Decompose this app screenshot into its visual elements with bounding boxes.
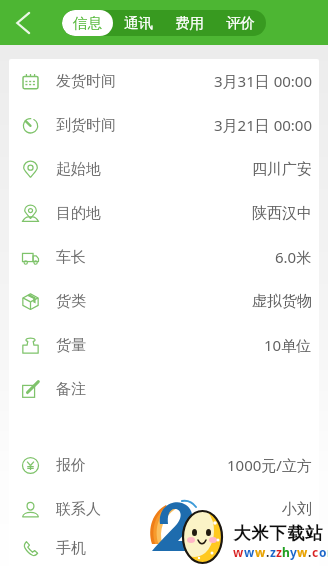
staticText: z [270,544,276,560]
button[interactable]: 货类 [9,279,319,323]
staticText: w [244,544,255,560]
staticText: 小刘 [282,500,312,519]
staticText: 评价 [226,14,255,32]
staticText: 6.0米 [275,247,312,267]
staticText: w [255,544,266,560]
staticText: w [297,544,308,560]
staticText: 1000元/立方 [227,455,312,475]
staticText: 联系人 [56,500,101,519]
button[interactable]: 费用 [164,10,215,36]
button[interactable]: 目的地 [9,191,319,235]
staticText: m [327,544,328,560]
staticText: 车长 [56,248,86,267]
button[interactable]: 到货时间 [9,103,319,147]
button[interactable]: 评价 [215,10,266,36]
staticText: 目的地 [56,204,101,223]
staticText: w [233,544,244,560]
staticText: 通讯 [124,14,153,32]
staticText: 起始地 [56,160,101,179]
button[interactable]: 通讯 [113,10,164,36]
staticText: c [312,544,319,560]
staticText: 虚拟货物 [252,292,312,311]
staticText: 货类 [56,292,86,311]
staticText: 陕西汉中 [252,204,312,223]
staticText: 手机 [56,539,86,558]
staticText: 到货时间 [56,116,116,135]
staticText: . [266,544,270,560]
button[interactable]: 货量 [9,323,319,367]
button[interactable]: 备注 [9,367,319,411]
button[interactable]: 起始地 [9,147,319,191]
staticText: 发货时间 [56,72,116,91]
button[interactable]: 报价 [9,443,319,487]
staticText: 3月31日 00:00 [214,71,312,91]
staticText: 报价 [56,456,86,475]
staticText: 四川广安 [252,160,312,179]
staticText: 10单位 [264,335,312,355]
button[interactable]: 手机 [9,531,319,566]
staticText: 货量 [56,336,86,355]
staticText: y [290,544,297,560]
staticText: o [319,544,327,560]
button[interactable]: Back [6,6,40,40]
staticText: z [276,544,282,560]
staticText: 3月21日 00:00 [214,115,312,135]
staticText: 备注 [56,380,86,399]
button[interactable]: 发货时间 [9,59,319,103]
staticText: h [282,544,290,560]
staticText: 大米下载站 [233,523,323,544]
button[interactable]: 联系人 [9,487,319,531]
button[interactable]: 车长 [9,235,319,279]
button[interactable]: 信息 [62,10,113,36]
staticText: . [308,544,312,560]
staticText: 信息 [73,14,102,32]
staticText: 费用 [175,14,204,32]
